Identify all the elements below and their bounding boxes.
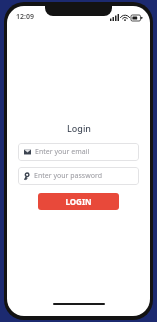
staticText: Enter your email (35, 147, 90, 157)
button[interactable]: Email (18, 143, 139, 161)
other: Email (24, 149, 31, 155)
button[interactable]: Password (18, 167, 139, 185)
staticText: LOGIN (65, 196, 92, 207)
staticText: Login (67, 122, 91, 134)
other: Password (24, 173, 30, 180)
staticText: 12:09 (16, 12, 34, 22)
button[interactable]: LOGIN (38, 193, 119, 210)
staticText: Enter your password (34, 171, 102, 181)
